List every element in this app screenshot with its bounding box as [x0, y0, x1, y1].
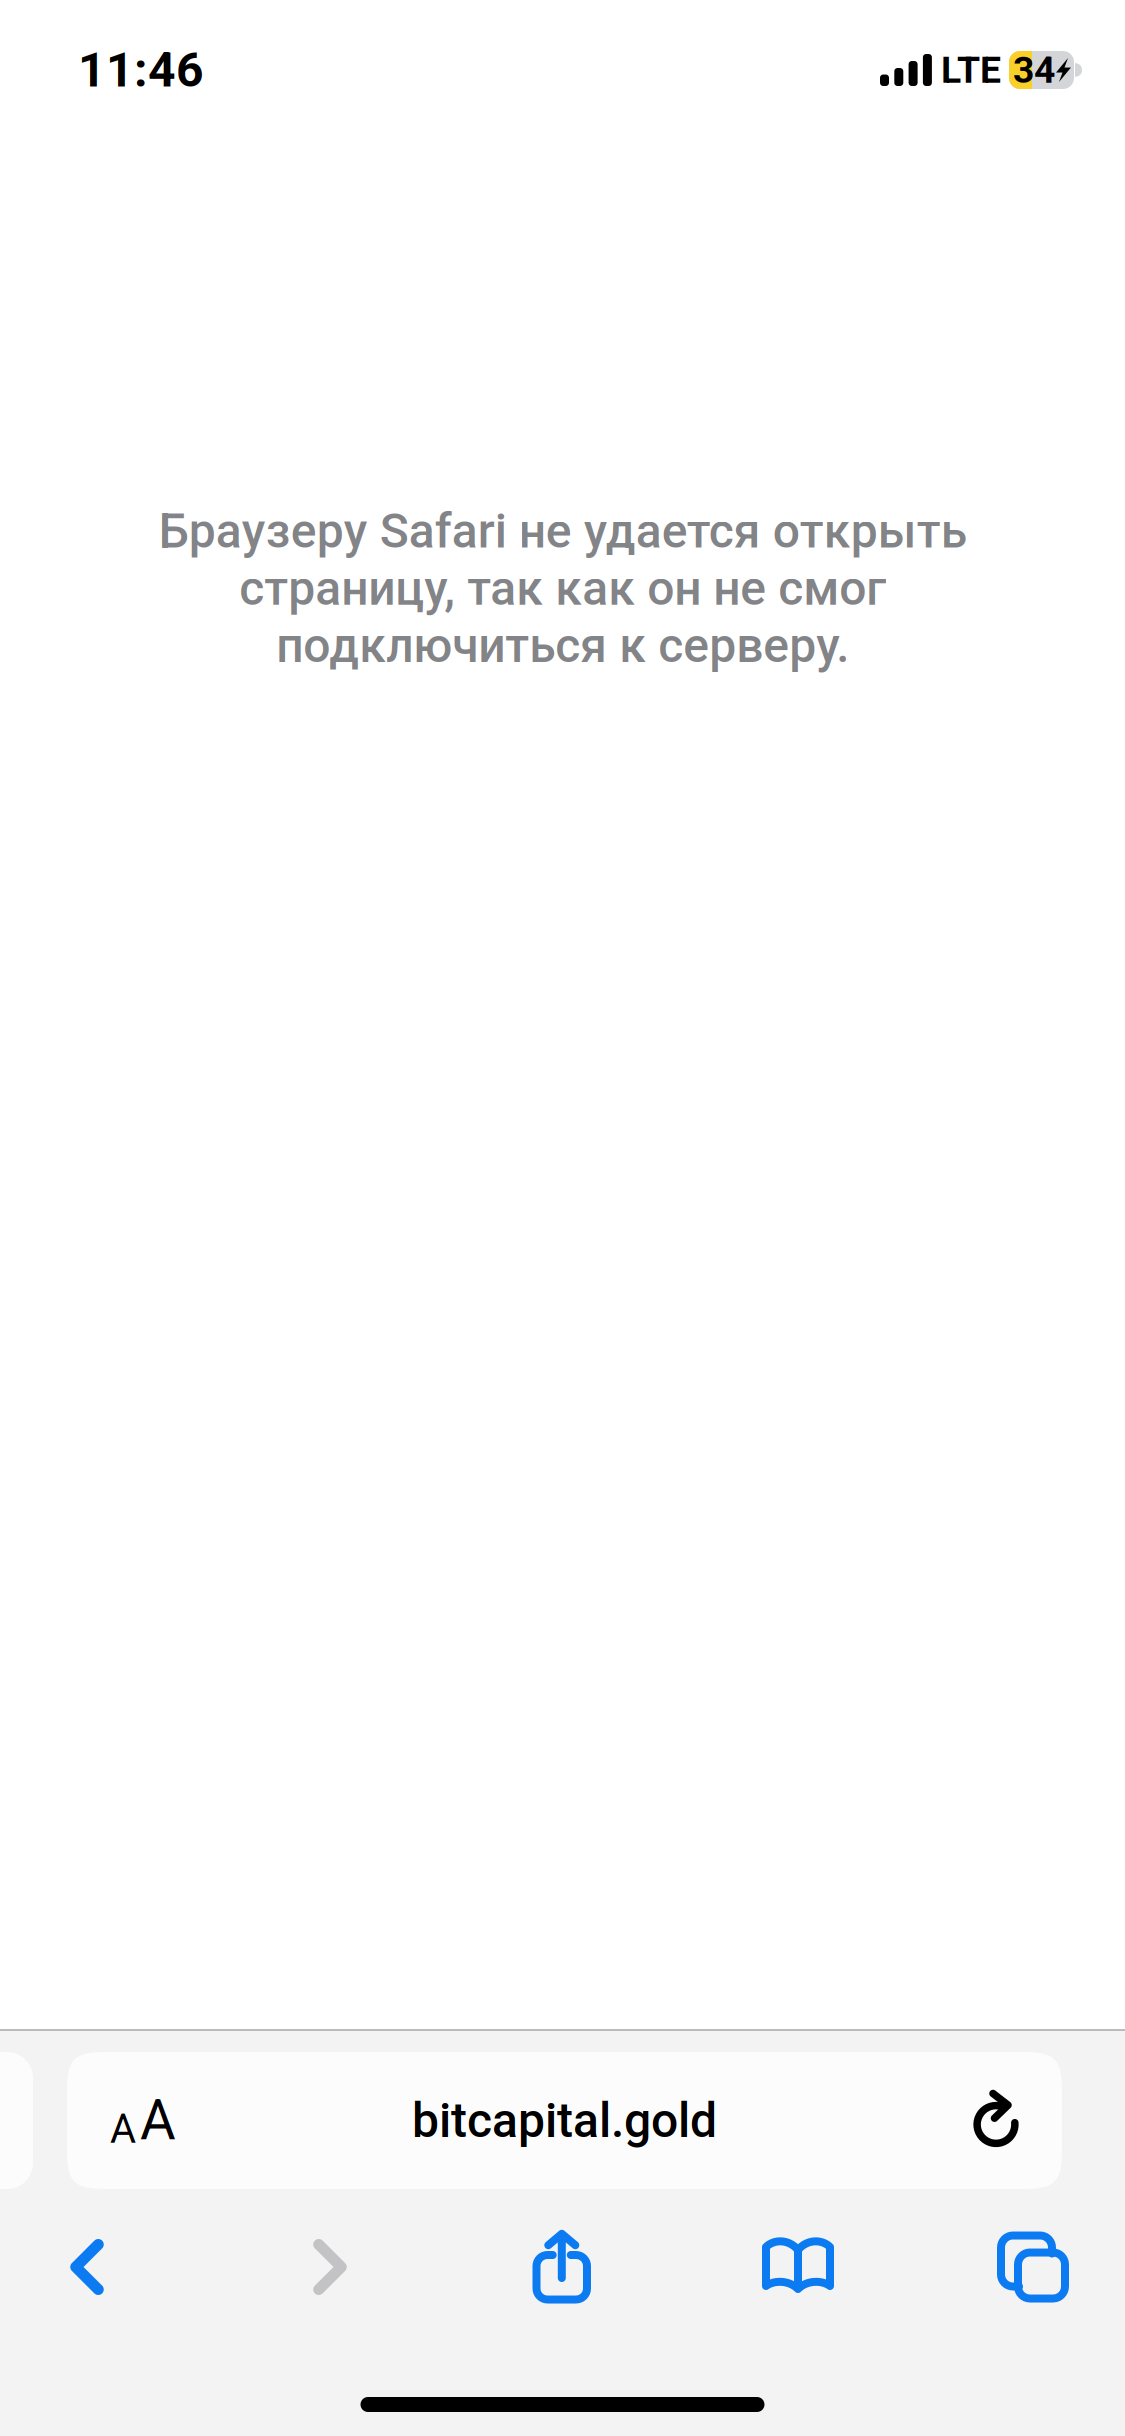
staticText: bitcapital.gold	[412, 2092, 717, 2149]
button[interactable]: Reload	[931, 2052, 1061, 2189]
staticText: 11:46	[78, 42, 204, 98]
staticText: 34	[1013, 48, 1055, 92]
button[interactable]: Share	[487, 2211, 637, 2323]
button[interactable]: bitcapital.gold	[67, 2052, 1062, 2189]
button[interactable]: Back	[12, 2211, 162, 2323]
button[interactable]: Text size	[78, 2052, 208, 2189]
staticText: LTE	[941, 48, 1001, 92]
staticText: A	[140, 2088, 176, 2153]
staticText: Браузеру Safari не удается открыть стран…	[158, 503, 966, 674]
button[interactable]: Bookmarks	[723, 2211, 873, 2323]
staticText: A	[110, 2106, 136, 2153]
button[interactable]: Forward	[255, 2211, 405, 2323]
button[interactable]: Tabs	[958, 2211, 1108, 2323]
